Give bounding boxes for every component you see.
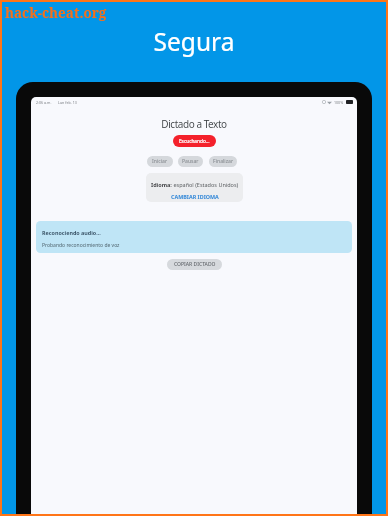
staticText: Iniciar	[152, 158, 168, 165]
staticText: Escuchando...	[179, 138, 210, 144]
staticText: hack-cheat.org	[5, 4, 107, 22]
button[interactable]: Idioma:	[146, 173, 243, 202]
button[interactable]: Iniciar	[147, 156, 173, 167]
staticText: Finalizar	[213, 158, 234, 165]
button[interactable]: COPIAR DICTADO	[167, 259, 222, 270]
staticText: CAMBIAR IDIOMA	[171, 193, 219, 200]
staticText: Segura	[2, 25, 386, 58]
staticText: COPIAR DICTADO	[174, 261, 216, 268]
button[interactable]: Pausar	[178, 156, 203, 167]
staticText: Pausar	[182, 158, 199, 165]
staticText: Reconociendo audio...	[42, 229, 101, 236]
staticText: Dictado a Texto	[31, 117, 357, 131]
button[interactable]: Finalizar	[209, 156, 237, 167]
staticText: español (Estados Unidos)	[172, 181, 239, 188]
staticText: Lun feb. 13	[58, 100, 77, 105]
staticText: Idioma:	[151, 181, 172, 188]
button[interactable]: Escuchando...	[173, 135, 216, 147]
staticText: 2:06 a.m.	[36, 100, 52, 105]
staticText: 100%	[334, 100, 344, 105]
staticText: Probando reconocimiento de voz	[42, 242, 120, 249]
